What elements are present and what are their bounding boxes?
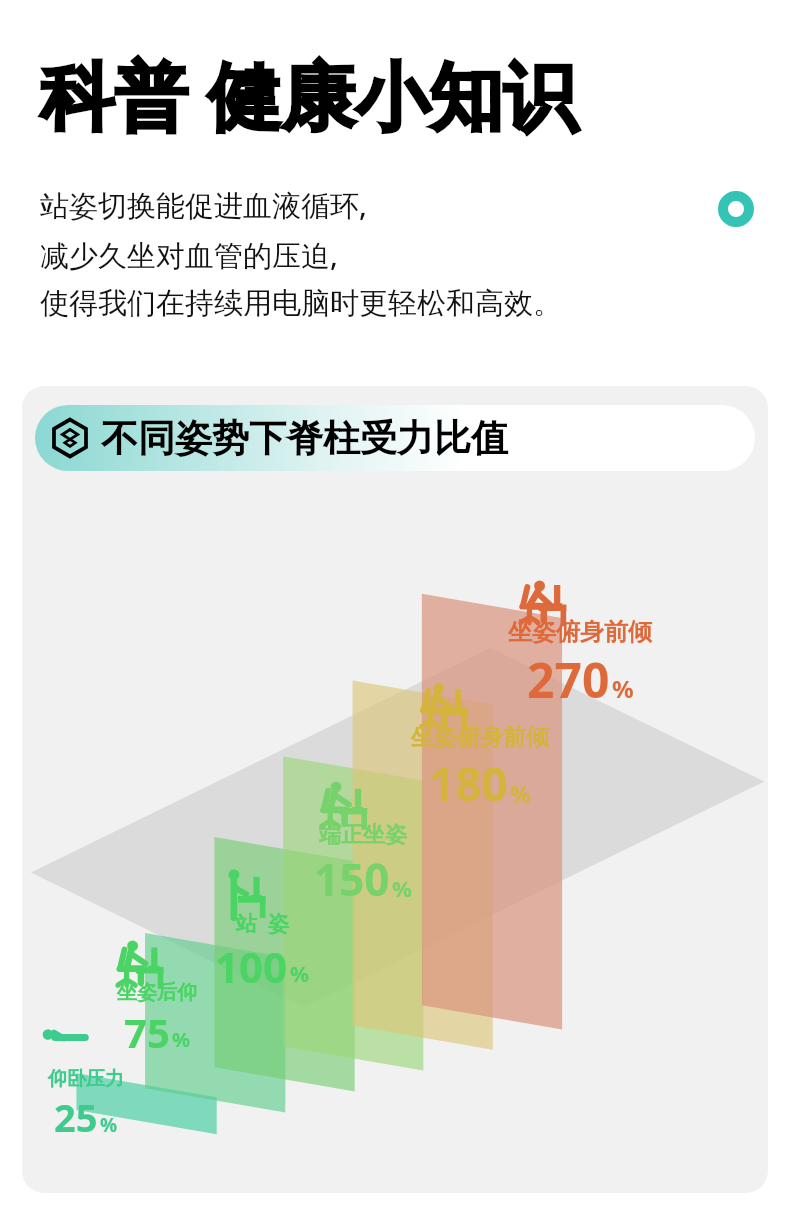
button[interactable]: Spine icon [22, 386, 768, 1193]
staticText: % [290, 960, 309, 989]
staticText: % [100, 1112, 118, 1138]
staticText: 100 [215, 938, 288, 995]
staticText: % [510, 778, 531, 809]
staticText: 150 [314, 849, 390, 909]
staticText: 坐姿俯身前倾 [508, 617, 652, 647]
staticText: 使得我们在持续用电脑时更轻松和高效。 [40, 285, 562, 322]
staticText: % [392, 873, 412, 903]
staticText: 仰卧压力 [48, 1067, 124, 1091]
other: Spine icon [48, 416, 92, 460]
staticText: % [172, 1026, 191, 1053]
staticText: 站 姿 [236, 909, 289, 938]
staticText: 不同姿势下脊柱受力比值 [101, 415, 508, 462]
staticText: 坐姿后仰 [117, 980, 197, 1005]
staticText: 75 [124, 1005, 170, 1059]
staticText: 坐姿俯身前倾 [411, 723, 549, 752]
button[interactable]: Info indicator [716, 189, 756, 229]
staticText: 25 [54, 1091, 98, 1143]
button[interactable]: Spine icon [35, 405, 755, 471]
staticText: 站姿切换能促进血液循环, [40, 185, 367, 225]
staticText: 减少久坐对血管的压迫, [40, 235, 338, 275]
staticText: % [612, 672, 634, 705]
staticText: 270 [527, 647, 610, 712]
staticText: 180 [429, 752, 508, 815]
staticText: 端正坐姿 [319, 821, 407, 849]
staticText: 科普 健康小知识 [40, 44, 578, 145]
